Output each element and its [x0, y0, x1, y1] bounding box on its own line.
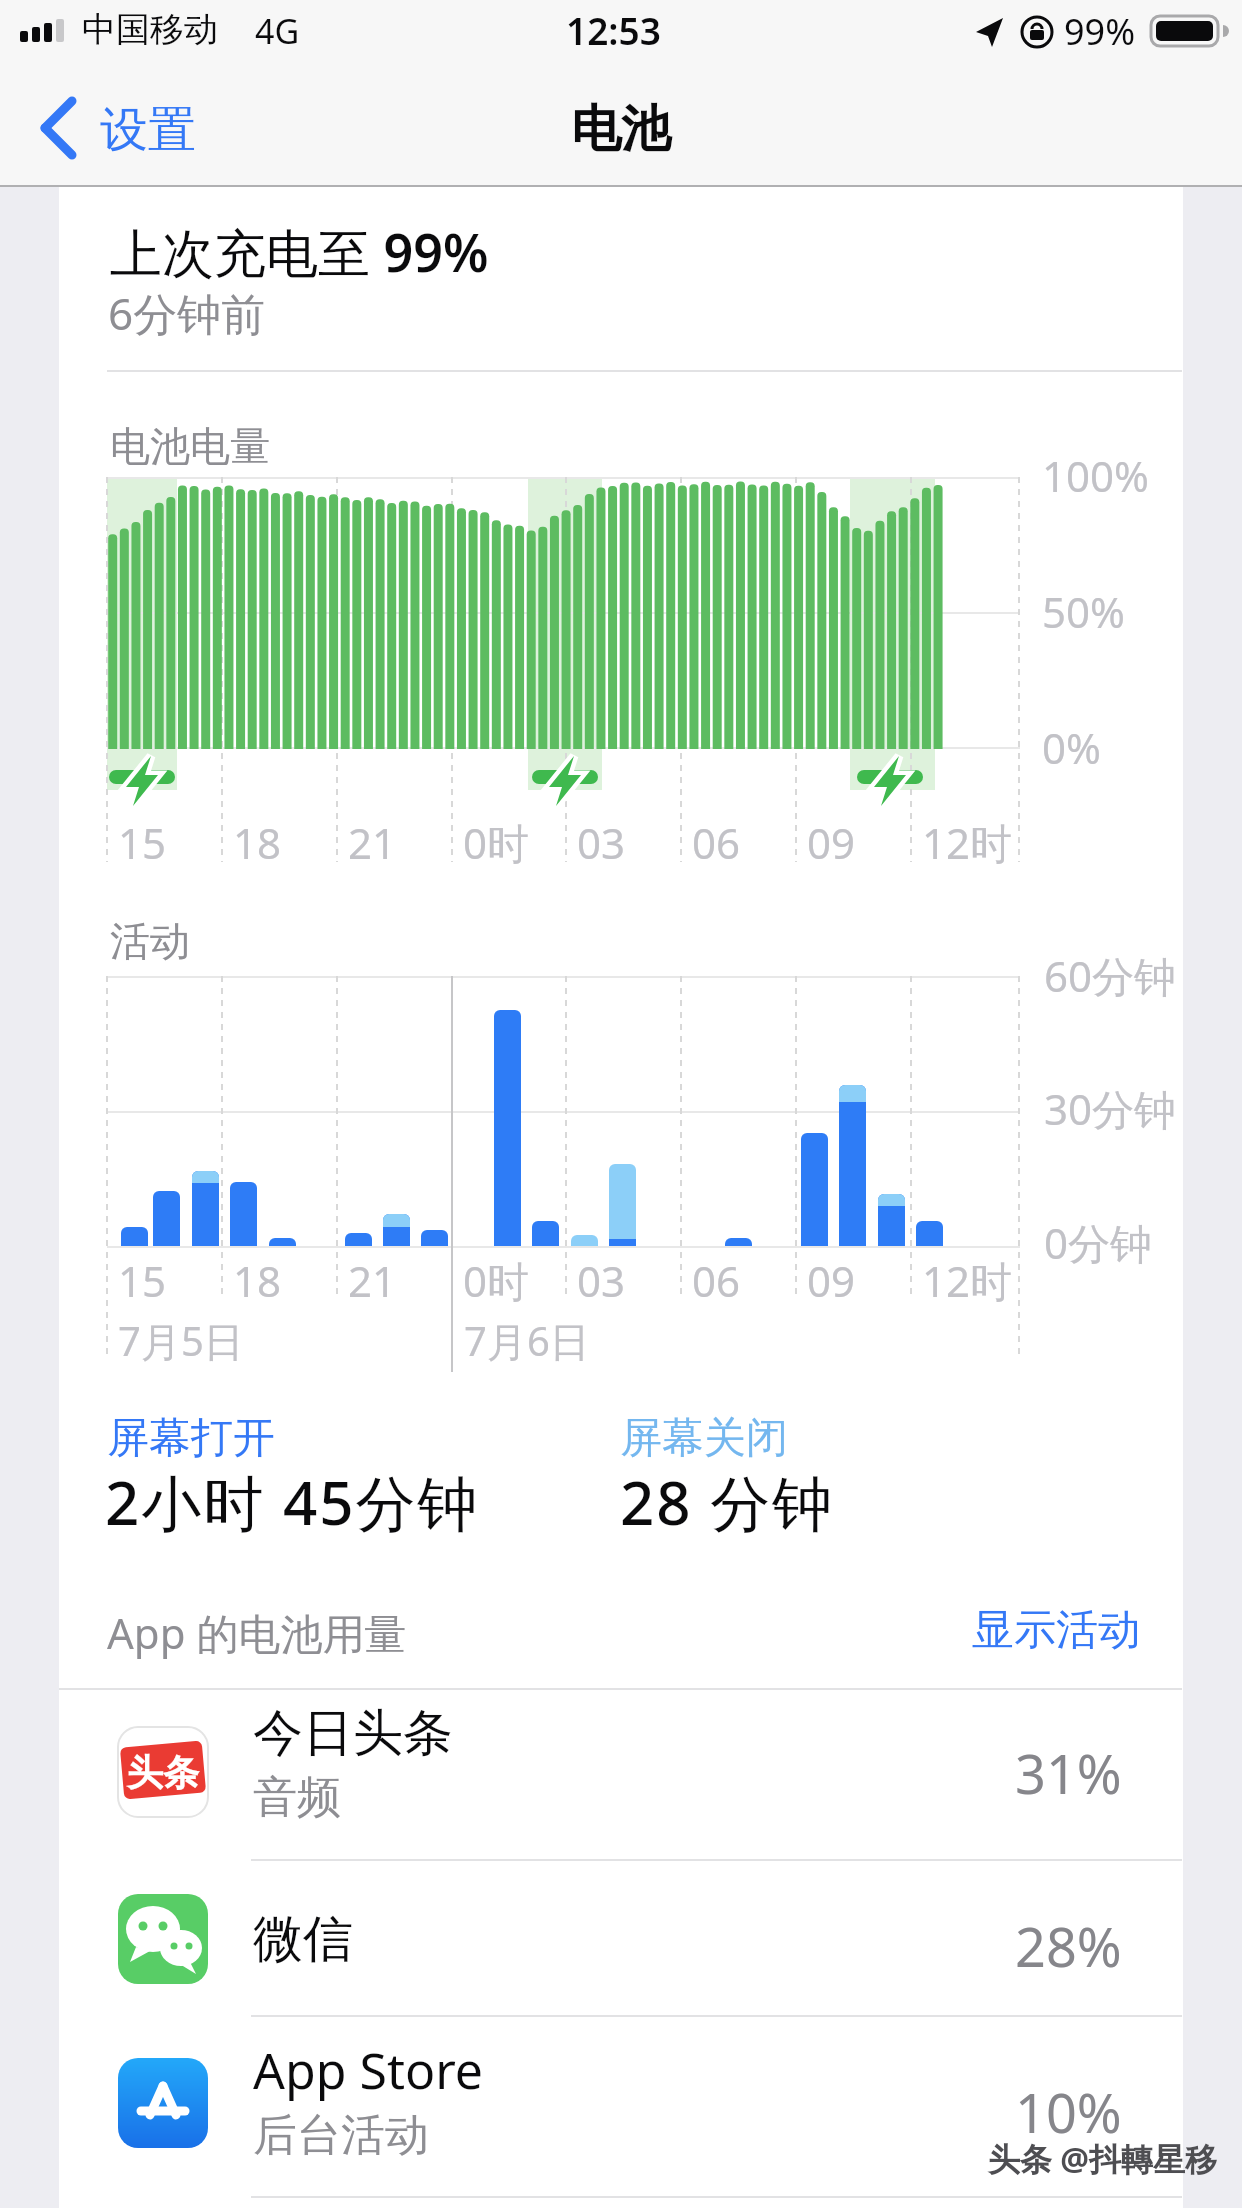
staticText: 0分钟	[1044, 1214, 1153, 1271]
staticText: 15	[118, 814, 167, 871]
staticText: 100%	[1042, 447, 1149, 504]
staticText: 12时	[922, 1252, 1013, 1309]
staticText: 显示活动	[972, 1604, 1140, 1657]
staticText: 12:53	[566, 5, 661, 55]
button[interactable]	[59, 1690, 1182, 1860]
staticText: 21	[348, 814, 397, 871]
staticText: App 的电池用量	[107, 1604, 407, 1661]
staticText: 28%	[1015, 1909, 1122, 1983]
button[interactable]: 显示活动	[940, 1604, 1140, 1660]
staticText: 活动	[110, 916, 190, 966]
staticText: 今日头条	[253, 1702, 453, 1765]
staticText: 0时	[463, 1252, 530, 1309]
staticText: 03	[577, 1252, 626, 1309]
staticText: 21	[348, 1252, 397, 1309]
staticText: 18	[233, 814, 282, 871]
staticText: 09	[807, 1252, 856, 1309]
staticText: 7月5日	[118, 1313, 244, 1368]
staticText: 28 分钟	[620, 1461, 835, 1543]
staticText: 31%	[1015, 1736, 1122, 1810]
staticText: 头条	[127, 1750, 199, 1795]
staticText: 18	[233, 1252, 282, 1309]
staticText: 30分钟	[1044, 1080, 1177, 1137]
staticText: App Store	[253, 2036, 484, 2104]
staticText: 06	[692, 1252, 741, 1309]
staticText: 设置	[100, 100, 196, 160]
staticText: 头条 @抖轉星移	[988, 2137, 1218, 2181]
staticText: 12时	[922, 814, 1013, 871]
staticText: 09	[807, 814, 856, 871]
staticText: 电池电量	[110, 421, 270, 471]
button[interactable]	[59, 1861, 1182, 2016]
staticText: 屏幕打开	[107, 1412, 275, 1465]
staticText: 10%	[1015, 2075, 1122, 2149]
staticText: 电池	[571, 98, 671, 161]
staticText: 2小时 45分钟	[105, 1461, 480, 1543]
button[interactable]	[30, 90, 250, 166]
staticText: 4G	[255, 8, 300, 54]
staticText: 15	[118, 1252, 167, 1309]
staticText: 屏幕关闭	[620, 1412, 788, 1465]
staticText: 后台活动	[253, 2108, 429, 2163]
staticText: 7月6日	[464, 1313, 590, 1368]
staticText: 微信	[253, 1908, 353, 1971]
button[interactable]	[59, 2017, 1182, 2197]
staticText: 音频	[253, 1770, 341, 1825]
staticText: 6分钟前	[108, 283, 266, 343]
staticText: 03	[577, 814, 626, 871]
staticText: 中国移动	[82, 8, 218, 51]
staticText: 99%	[1064, 7, 1136, 56]
staticText: 上次充电至 99%	[110, 216, 489, 287]
staticText: 06	[692, 814, 741, 871]
staticText: 0时	[463, 814, 530, 871]
staticText: 50%	[1042, 583, 1125, 640]
staticText: 60分钟	[1044, 947, 1177, 1004]
staticText: 0%	[1042, 719, 1101, 776]
